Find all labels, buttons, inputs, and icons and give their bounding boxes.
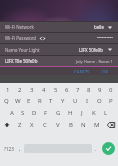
staticText: H <box>68 109 73 117</box>
staticText: July Home - Room 1 <box>76 59 113 64</box>
staticText: E <box>27 97 31 105</box>
staticText: Choose a Wi-Fi network to connect your n… <box>0 42 118 47</box>
staticText: 4 <box>42 86 46 94</box>
staticText: •••••••••• <box>97 35 113 41</box>
staticText: N <box>81 121 86 129</box>
button[interactable]: 3 <box>26 84 38 95</box>
staticText: F <box>44 109 48 117</box>
button[interactable]: Y <box>57 95 69 107</box>
button[interactable]: Name Your Light <box>0 44 118 55</box>
staticText: , <box>19 145 21 152</box>
staticText: Y <box>61 97 65 105</box>
staticText: X <box>30 121 34 129</box>
staticText: D <box>32 109 37 117</box>
staticText: 1 <box>6 86 10 94</box>
button[interactable]: H <box>64 107 76 119</box>
button[interactable]: J <box>76 107 88 119</box>
button[interactable]: Z <box>14 119 26 131</box>
staticText: J <box>81 109 83 117</box>
button[interactable]: B <box>64 119 77 131</box>
button[interactable]: X <box>26 119 38 131</box>
staticText: 2 <box>18 86 22 94</box>
button[interactable]: ?123 <box>2 132 16 165</box>
button[interactable]: Q <box>1 95 12 107</box>
staticText: 6 <box>65 86 69 94</box>
button[interactable]: Wi-Fi Password <box>0 33 118 43</box>
button[interactable]: I <box>81 95 93 107</box>
staticText: S <box>21 109 25 117</box>
staticText: LIFX Tile 50fe0b <box>5 58 38 64</box>
staticText: 0 <box>109 86 113 94</box>
button[interactable]: E <box>23 95 34 107</box>
staticText: Z <box>18 121 22 129</box>
staticText: Wi-Fi Network <box>5 24 34 30</box>
staticText: . <box>95 145 97 152</box>
staticText: R <box>38 97 42 105</box>
button[interactable]: M <box>90 119 103 131</box>
staticText: Q <box>4 97 9 105</box>
button[interactable]: Backspace <box>103 119 118 131</box>
staticText: K <box>92 109 96 117</box>
staticText: P <box>109 97 113 105</box>
button[interactable]: 1 <box>2 84 14 95</box>
staticText: belle <box>94 24 104 30</box>
staticText: ?123 <box>4 146 14 152</box>
button[interactable]: , <box>16 132 24 165</box>
button[interactable]: K <box>88 107 100 119</box>
button[interactable]: Wi-Fi Network <box>0 22 118 32</box>
staticText: V <box>56 121 60 129</box>
staticText: CANCEL <box>74 69 91 73</box>
button[interactable]: Enter <box>102 142 115 155</box>
staticText: C <box>43 121 47 129</box>
button[interactable]: O <box>93 95 105 107</box>
staticText: B <box>69 121 73 129</box>
staticText: Wi-Fi Password <box>5 35 37 41</box>
staticText: M <box>94 121 100 129</box>
staticText: W <box>15 97 21 105</box>
staticText: G <box>56 109 61 117</box>
button[interactable]: U <box>69 95 81 107</box>
staticText: A <box>10 109 14 117</box>
button[interactable]: 6 <box>61 84 72 95</box>
button[interactable]: LIFX Tile 50fe0b <box>0 56 118 66</box>
button[interactable]: R <box>34 95 45 107</box>
button[interactable]: Shift <box>0 119 14 131</box>
staticText: 3 <box>30 86 34 94</box>
staticText: OK <box>102 69 109 73</box>
staticText: 8 <box>87 86 91 94</box>
button[interactable]: 0 <box>105 84 116 95</box>
button[interactable]: L <box>100 107 112 119</box>
button[interactable]: 4 <box>38 84 50 95</box>
staticText: I <box>86 97 89 105</box>
staticText: 9 <box>98 86 102 94</box>
staticText: CONNECT NEW LIGHT <box>22 31 97 41</box>
button[interactable]: P <box>105 95 117 107</box>
button[interactable]: T <box>45 95 57 107</box>
button[interactable]: G <box>52 107 64 119</box>
staticText: T <box>49 97 53 105</box>
button[interactable]: W <box>12 95 23 107</box>
staticText: L <box>104 109 108 117</box>
staticText: 5 <box>54 86 58 94</box>
button[interactable]: A <box>6 107 17 119</box>
button[interactable]: 9 <box>94 84 105 95</box>
button[interactable]: 5 <box>50 84 61 95</box>
staticText: LIFX 50fe0b <box>79 47 104 53</box>
button[interactable]: CANCEL <box>70 67 95 75</box>
staticText: U <box>73 97 78 105</box>
button[interactable]: 7 <box>72 84 83 95</box>
button[interactable]: . <box>92 132 100 165</box>
button[interactable]: V <box>51 119 64 131</box>
button[interactable]: D <box>28 107 40 119</box>
staticText: O <box>97 97 102 105</box>
button[interactable]: 8 <box>83 84 94 95</box>
button[interactable]: C <box>38 119 51 131</box>
staticText: Name Your Light <box>5 47 40 53</box>
button[interactable]: OK <box>98 67 113 75</box>
button[interactable]: F <box>40 107 52 119</box>
other: Show password <box>39 36 46 41</box>
button[interactable]: S <box>17 107 28 119</box>
button[interactable]: N <box>77 119 90 131</box>
button[interactable]: 2 <box>14 84 26 95</box>
